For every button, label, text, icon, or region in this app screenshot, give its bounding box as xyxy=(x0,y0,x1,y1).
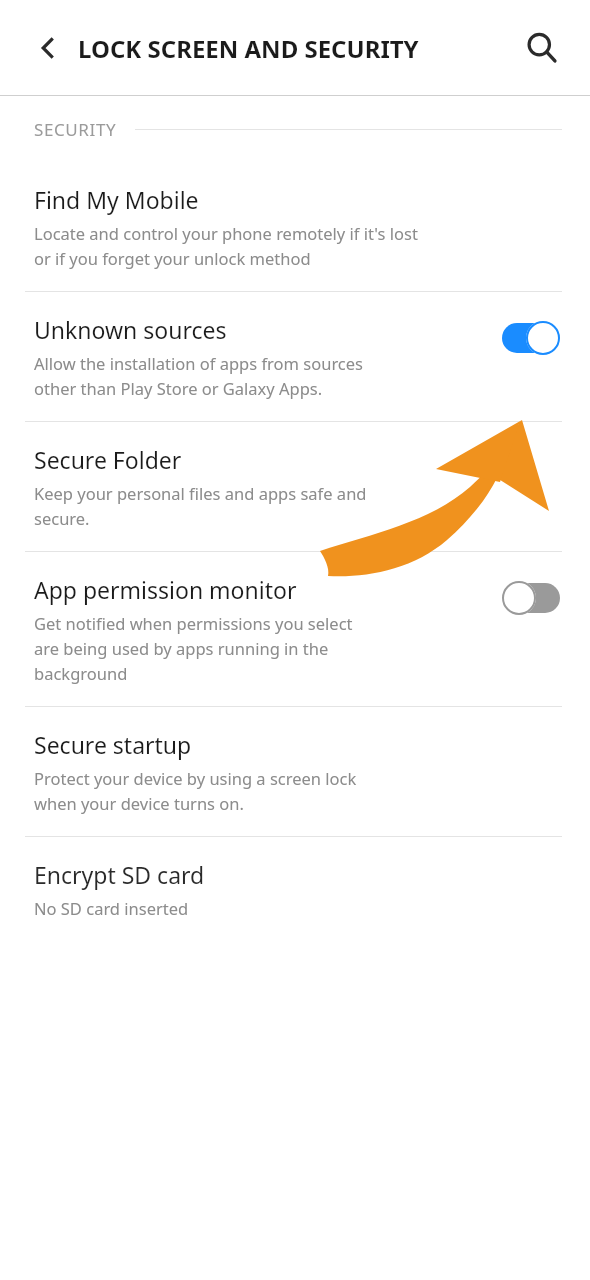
staticText: LOCK SCREEN AND SECURITY xyxy=(78,32,419,65)
button[interactable]: Search xyxy=(518,24,566,72)
staticText: Get notified when permissions you select… xyxy=(34,612,353,684)
staticText: Unknown sources xyxy=(34,314,227,345)
button[interactable]: Off xyxy=(500,580,562,616)
staticText: Protect your device by using a screen lo… xyxy=(34,767,357,814)
button[interactable]: Secure Folder xyxy=(0,422,590,551)
staticText: Locate and control your phone remotely i… xyxy=(34,222,418,269)
button[interactable]: Back xyxy=(24,24,72,72)
staticText: Keep your personal files and apps safe a… xyxy=(34,482,367,529)
staticText: SECURITY xyxy=(34,118,117,141)
staticText: Encrypt SD card xyxy=(34,859,205,890)
button[interactable]: Unknown sources xyxy=(0,292,590,421)
staticText: Allow the installation of apps from sour… xyxy=(34,352,363,399)
button[interactable]: Find My Mobile xyxy=(0,162,590,291)
staticText: Secure startup xyxy=(34,729,192,760)
staticText: No SD card inserted xyxy=(34,897,189,919)
button[interactable]: App permission monitor xyxy=(0,552,590,706)
staticText: Secure Folder xyxy=(34,444,182,475)
staticText: App permission monitor xyxy=(34,574,297,605)
button[interactable]: Encrypt SD card xyxy=(0,837,590,941)
button[interactable]: On xyxy=(500,320,562,356)
button[interactable]: Secure startup xyxy=(0,707,590,836)
staticText: Find My Mobile xyxy=(34,184,199,215)
